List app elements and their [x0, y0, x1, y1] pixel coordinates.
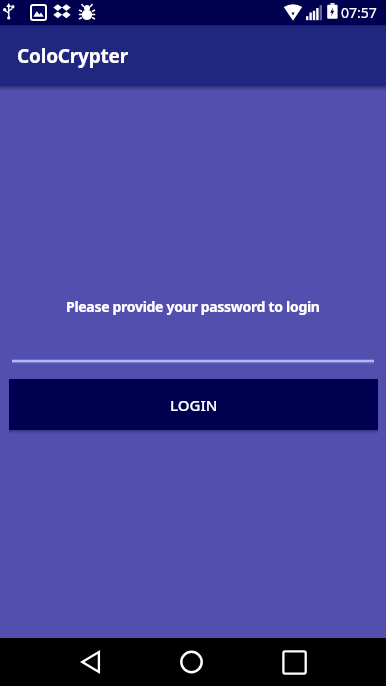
- staticText: Please provide your password to login: [66, 297, 320, 316]
- staticText: ColoCrypter: [17, 43, 129, 69]
- staticText: 07:57: [341, 3, 377, 22]
- staticText: LOGIN: [170, 395, 218, 415]
- button[interactable]: LOGIN: [9, 379, 378, 430]
- button[interactable]: [68, 638, 116, 686]
- button[interactable]: [270, 638, 318, 686]
- button[interactable]: [167, 638, 215, 686]
